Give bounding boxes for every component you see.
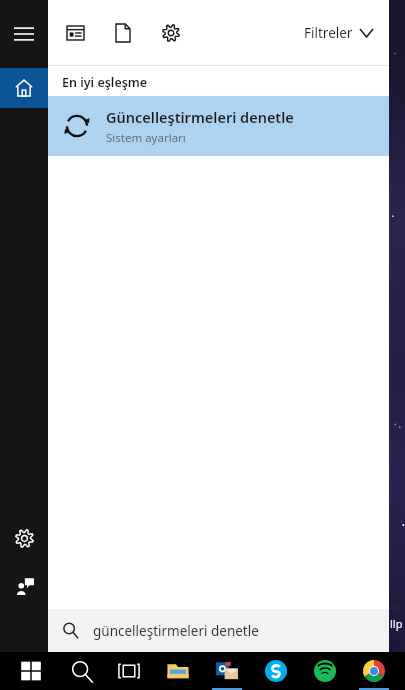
button[interactable]: Menu [0, 14, 48, 54]
button[interactable]: All [56, 14, 94, 52]
staticText: En iyi eşleşme [62, 74, 148, 91]
button[interactable]: Güncelleştirmeleri denetle [48, 96, 389, 156]
button[interactable]: Search [59, 652, 101, 690]
staticText: Sistem ayarları [106, 130, 186, 146]
button[interactable]: File Explorer [157, 652, 199, 690]
button[interactable]: Start [10, 652, 52, 690]
button[interactable]: Chrome [353, 652, 395, 690]
button[interactable]: Outlook [206, 652, 248, 690]
staticText: Filtreler [304, 24, 353, 42]
button[interactable]: Settings [0, 518, 48, 558]
button[interactable]: Documents [104, 14, 142, 52]
button[interactable]: Skype [255, 652, 297, 690]
button[interactable]: Spotify [304, 652, 346, 690]
button[interactable]: Filtreler [294, 16, 383, 50]
staticText: llp [390, 616, 403, 631]
button[interactable]: Feedback [0, 566, 48, 606]
button[interactable]: Task view [108, 652, 150, 690]
button[interactable]: Settings filter [152, 14, 190, 52]
button[interactable]: güncelleştirmeleri denetle [48, 609, 389, 652]
staticText: güncelleştirmeleri denetle [93, 622, 259, 640]
staticText: Güncelleştirmeleri denetle [106, 107, 294, 127]
button[interactable]: Home [0, 68, 48, 108]
